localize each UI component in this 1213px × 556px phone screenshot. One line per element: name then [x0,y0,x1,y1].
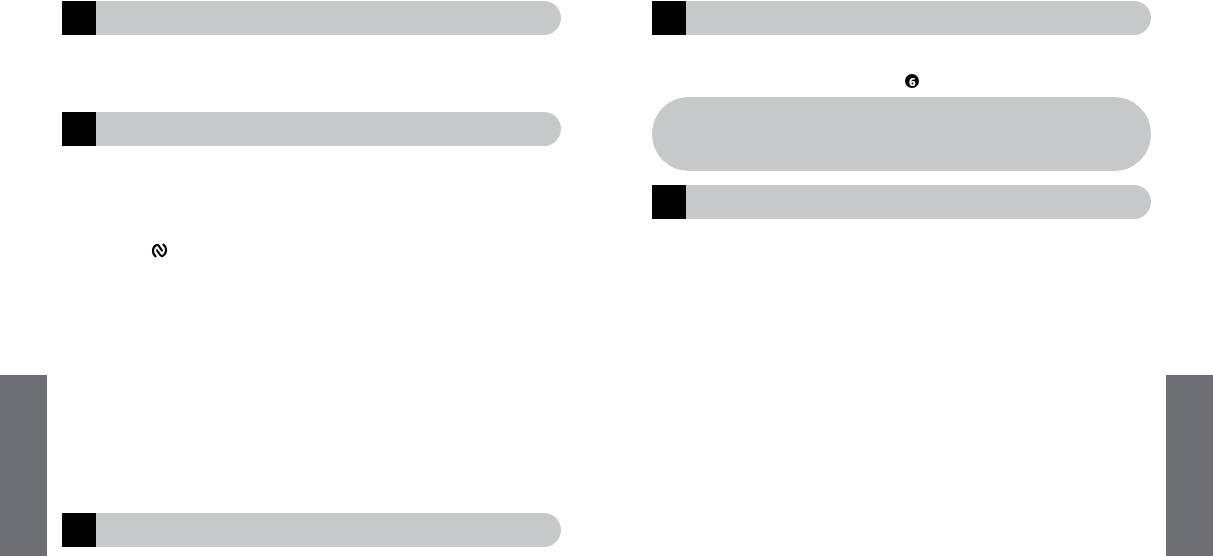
button[interactable]: List item one [62,1,561,35]
button[interactable]: List item three [62,513,561,547]
button[interactable]: Featured card [652,97,1151,171]
button[interactable]: Link [152,244,167,257]
button[interactable]: List item two [62,112,561,146]
button[interactable]: Detail item two [652,185,1151,219]
button[interactable]: 6 notifications [905,74,919,88]
staticText: 6 [909,74,916,88]
button[interactable]: Detail item one [652,1,1151,35]
